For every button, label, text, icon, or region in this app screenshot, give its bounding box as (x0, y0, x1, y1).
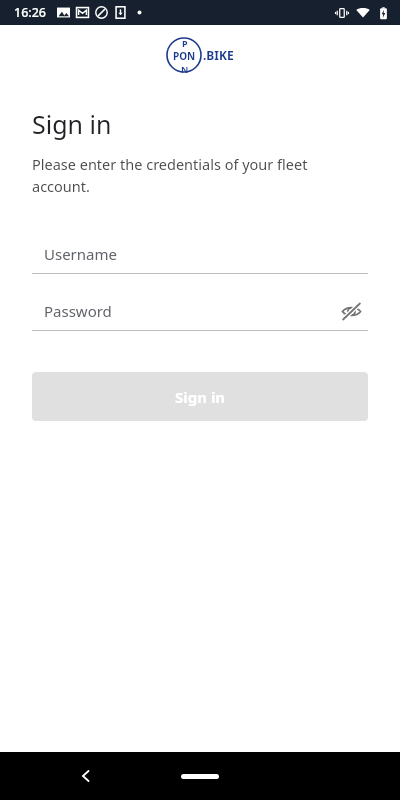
staticText: Password (44, 301, 112, 321)
staticText: PON (173, 49, 196, 63)
staticText: 16:26 (14, 4, 47, 21)
staticText: .BIKE (203, 47, 234, 63)
staticText: P (182, 37, 188, 49)
button[interactable]: Show password (334, 294, 368, 328)
button[interactable]: Password (32, 291, 368, 330)
staticText: N (181, 63, 189, 73)
button[interactable]: Username (32, 234, 368, 273)
staticText: Sign in (175, 387, 226, 407)
staticText: Username (44, 244, 117, 264)
button[interactable]: Sign in (32, 372, 368, 421)
button[interactable]: Back (68, 758, 104, 794)
button[interactable]: Home (170, 761, 230, 791)
staticText: Sign in (32, 107, 112, 141)
staticText: Please enter the credentials of your fle… (32, 154, 368, 196)
